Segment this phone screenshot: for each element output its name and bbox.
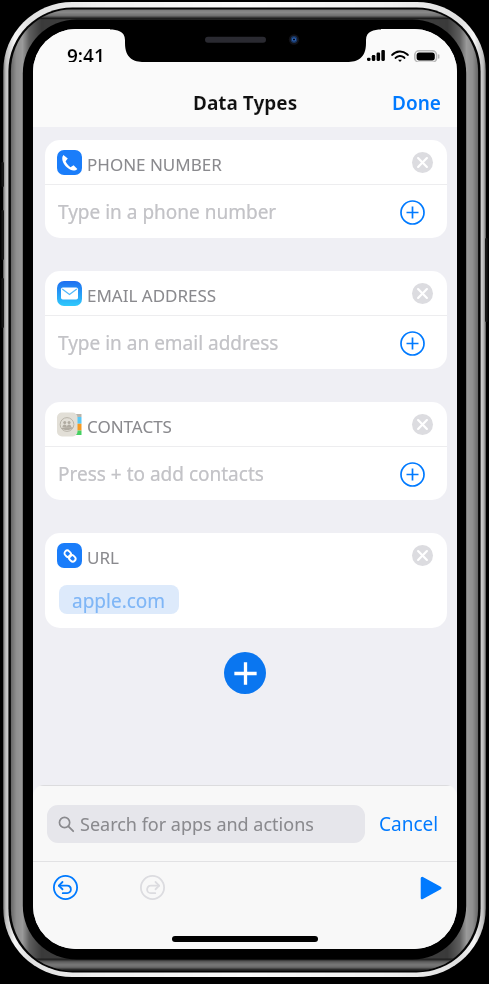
button[interactable]: CONTACTS <box>45 402 447 446</box>
staticText: Type in an email address <box>58 330 279 356</box>
staticText: Done <box>392 90 441 116</box>
staticText: Type in a phone number <box>58 199 277 225</box>
staticText: Press + to add contacts <box>58 461 264 487</box>
button[interactable]: Play <box>413 870 449 906</box>
button[interactable]: Cancel <box>371 805 447 843</box>
button[interactable]: Add item <box>397 328 427 358</box>
staticText: Cancel <box>379 811 439 837</box>
button[interactable]: Search for apps and actions <box>47 805 365 843</box>
button[interactable]: Add item <box>397 197 427 227</box>
staticText: PHONE NUMBER <box>87 153 222 176</box>
staticText: apple.com <box>72 588 166 614</box>
staticText: 9:41 <box>67 43 105 69</box>
button[interactable]: Done <box>376 82 457 124</box>
button[interactable]: Redo <box>140 875 165 900</box>
staticText: Search for apps and actions <box>80 812 314 837</box>
button[interactable]: EMAIL ADDRESS <box>45 271 447 315</box>
staticText: Data Types <box>193 90 298 116</box>
button[interactable]: Press + to add contacts <box>45 447 447 500</box>
button[interactable]: Undo <box>53 875 78 900</box>
button[interactable]: apple.com <box>59 585 179 614</box>
button[interactable]: Add <box>224 652 266 694</box>
button[interactable]: Type in a phone number <box>45 185 447 238</box>
staticText: CONTACTS <box>87 415 172 438</box>
button[interactable]: PHONE NUMBER <box>45 140 447 184</box>
staticText: EMAIL ADDRESS <box>87 284 217 307</box>
staticText: URL <box>87 546 119 569</box>
button[interactable]: URL <box>45 533 447 577</box>
button[interactable]: Add item <box>397 459 427 489</box>
button[interactable]: Type in an email address <box>45 316 447 369</box>
